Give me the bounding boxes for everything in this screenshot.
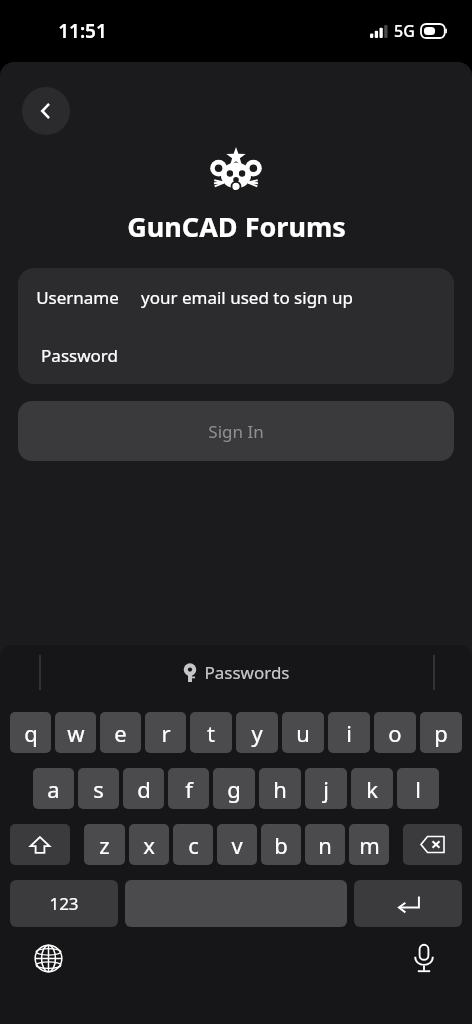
button[interactable]: e: [100, 712, 141, 753]
staticText: 11:51: [58, 18, 107, 44]
staticText: a: [47, 774, 60, 804]
staticText: n: [318, 830, 332, 860]
staticText: x: [143, 830, 155, 860]
button[interactable]: g: [213, 768, 255, 809]
staticText: Passwords: [204, 661, 290, 684]
staticText: your email used to sign up: [141, 286, 353, 309]
button[interactable]: f: [168, 768, 209, 809]
staticText: c: [188, 830, 199, 860]
button[interactable]: Change keyboard: [30, 940, 66, 976]
staticText: j: [323, 774, 329, 804]
button[interactable]: n: [305, 824, 345, 865]
staticText: GunCAD Forums: [127, 208, 346, 245]
button[interactable]: b: [261, 824, 301, 865]
button[interactable]: i: [328, 712, 370, 753]
button[interactable]: d: [123, 768, 164, 809]
staticText: z: [99, 830, 110, 860]
staticText: p: [434, 718, 448, 748]
staticText: o: [388, 718, 402, 748]
staticText: k: [366, 774, 378, 804]
button[interactable]: Sign In: [18, 401, 454, 461]
staticText: s: [93, 774, 104, 804]
button[interactable]: w: [55, 712, 96, 753]
button[interactable]: Username: [18, 268, 454, 326]
staticText: 5G: [394, 20, 415, 42]
button[interactable]: Back: [22, 87, 70, 135]
button[interactable]: q: [10, 712, 51, 753]
button[interactable]: Passwords: [183, 661, 290, 684]
staticText: m: [359, 830, 380, 860]
staticText: i: [346, 718, 352, 748]
staticText: q: [24, 718, 38, 748]
staticText: w: [67, 718, 85, 748]
staticText: Password: [41, 344, 118, 367]
staticText: g: [227, 774, 241, 804]
button[interactable]: u: [282, 712, 324, 753]
staticText: y: [251, 718, 263, 748]
button[interactable]: x: [129, 824, 169, 865]
button[interactable]: k: [351, 768, 393, 809]
staticText: d: [137, 774, 151, 804]
staticText: l: [415, 774, 421, 804]
button[interactable]: m: [349, 824, 389, 865]
button[interactable]: l: [397, 768, 439, 809]
button[interactable]: c: [173, 824, 213, 865]
staticText: f: [185, 774, 193, 804]
button[interactable]: Shift: [10, 824, 70, 865]
staticText: Username: [36, 286, 119, 309]
staticText: u: [296, 718, 310, 748]
staticText: 123: [49, 892, 79, 915]
button[interactable]: o: [374, 712, 416, 753]
staticText: r: [161, 718, 171, 748]
button[interactable]: Return: [354, 880, 462, 927]
button[interactable]: y: [236, 712, 278, 753]
button[interactable]: a: [33, 768, 74, 809]
staticText: b: [274, 830, 288, 860]
staticText: h: [273, 774, 287, 804]
staticText: e: [114, 718, 127, 748]
button[interactable]: s: [78, 768, 119, 809]
staticText: v: [231, 830, 243, 860]
button[interactable]: h: [259, 768, 301, 809]
button[interactable]: Password: [18, 326, 454, 384]
staticText: t: [207, 718, 215, 748]
button[interactable]: r: [145, 712, 186, 753]
button[interactable]: j: [305, 768, 347, 809]
button[interactable]: Backspace: [403, 824, 462, 865]
button[interactable]: p: [420, 712, 462, 753]
button[interactable]: v: [217, 824, 257, 865]
button[interactable]: 123: [10, 880, 118, 927]
button[interactable]: Dictation: [406, 940, 442, 976]
button[interactable]: t: [190, 712, 232, 753]
button[interactable]: z: [84, 824, 125, 865]
staticText: Sign In: [208, 420, 264, 443]
